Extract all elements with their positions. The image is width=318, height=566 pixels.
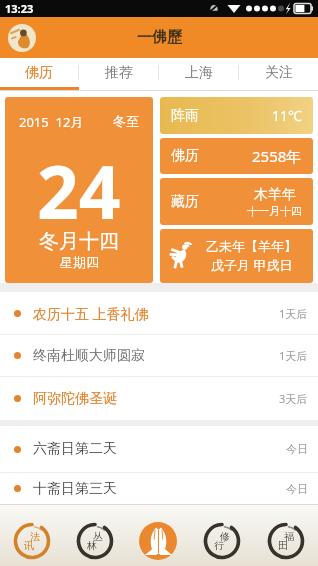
staticText: 法 xyxy=(30,530,40,543)
button[interactable]: 十斋日第三天 xyxy=(0,473,318,504)
button[interactable]: 福 xyxy=(254,522,318,560)
staticText: 终南杜顺大师圆寂 xyxy=(33,347,145,365)
staticText: 2015 12月 xyxy=(19,113,84,131)
staticText: 讯 xyxy=(24,539,34,552)
staticText: 十斋日第三天 xyxy=(33,480,117,498)
staticText: 十一月十四 xyxy=(247,204,302,218)
staticText: 戊子月 甲戌日 xyxy=(211,256,293,274)
button[interactable]: 修 xyxy=(190,522,254,560)
staticText: 木羊年 xyxy=(254,186,296,204)
staticText: 乙未年【羊年】 xyxy=(206,238,297,254)
button[interactable]: 丛 xyxy=(63,522,126,560)
staticText: 1天后 xyxy=(279,348,308,363)
button[interactable] xyxy=(126,522,190,560)
staticText: 阿弥陀佛圣诞 xyxy=(33,390,117,408)
button[interactable]: 终南杜顺大师圆寂 xyxy=(0,335,318,376)
staticText: 13:23 xyxy=(5,1,34,16)
staticText: 星期四 xyxy=(60,254,99,270)
staticText: 冬至 xyxy=(113,113,139,129)
staticText: 修 xyxy=(220,530,230,543)
button[interactable]: 佛历 xyxy=(0,58,78,87)
staticText: 上海 xyxy=(185,64,213,82)
staticText: 关注 xyxy=(265,64,293,82)
button[interactable]: 关注 xyxy=(239,58,318,87)
staticText: 今日 xyxy=(286,482,308,496)
staticText: 1天后 xyxy=(279,306,308,321)
staticText: 林 xyxy=(87,539,97,552)
staticText: 2558年 xyxy=(252,146,302,166)
button[interactable]: 藏历 xyxy=(160,178,313,225)
staticText: 冬月十四 xyxy=(39,229,119,254)
staticText: 田 xyxy=(278,539,288,552)
button[interactable]: 法 xyxy=(0,522,63,560)
button[interactable]: 2015 12月 xyxy=(5,97,153,283)
staticText: 六斋日第二天 xyxy=(33,440,117,458)
staticText: 行 xyxy=(214,539,224,552)
staticText: 阵雨 xyxy=(171,107,199,125)
staticText: 今日 xyxy=(286,442,308,456)
button[interactable] xyxy=(8,24,36,52)
button[interactable]: 佛历 xyxy=(160,138,313,174)
button[interactable]: 农历十五 上香礼佛 xyxy=(0,292,318,334)
button[interactable]: 六斋日第二天 xyxy=(0,426,318,472)
staticText: 佛历 xyxy=(171,147,199,165)
staticText: 农历十五 上香礼佛 xyxy=(33,304,149,323)
staticText: 11℃ xyxy=(272,106,302,125)
button[interactable]: 上海 xyxy=(159,58,238,87)
staticText: 3天后 xyxy=(279,391,308,406)
staticText: 福 xyxy=(284,530,294,543)
button[interactable]: 乙未年【羊年】 xyxy=(160,229,313,283)
staticText: 佛历 xyxy=(25,64,53,82)
button[interactable]: 阿弥陀佛圣诞 xyxy=(0,377,318,420)
staticText: 24 xyxy=(37,141,121,239)
staticText: 一佛歷 xyxy=(137,28,182,47)
staticText: 推荐 xyxy=(105,64,133,82)
staticText: 丛 xyxy=(93,530,103,543)
staticText: 藏历 xyxy=(171,193,199,211)
button[interactable]: 推荐 xyxy=(79,58,158,87)
button[interactable]: 阵雨 xyxy=(160,97,313,134)
